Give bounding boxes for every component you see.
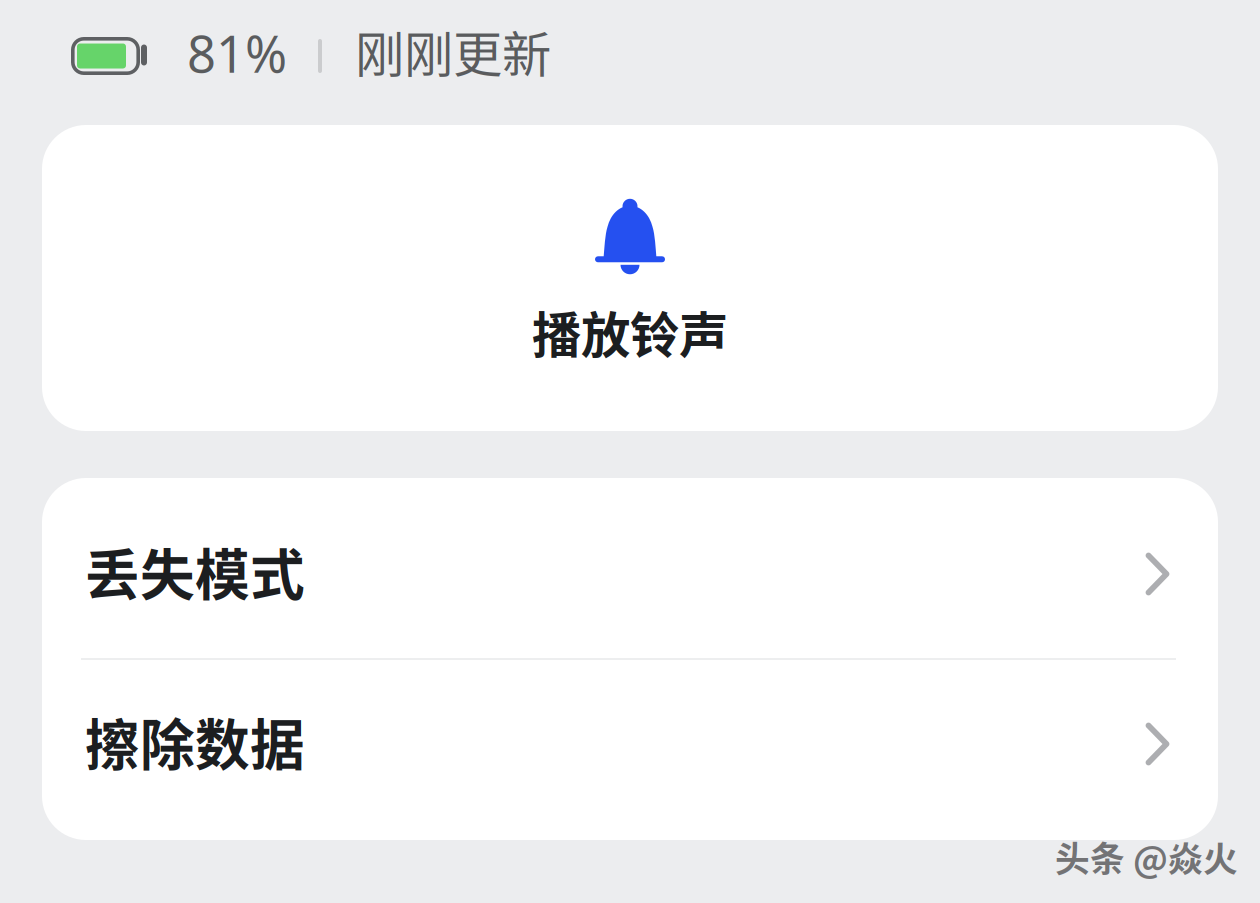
staticText: 丢失模式: [85, 531, 305, 611]
staticText: 头条 @焱火: [1055, 832, 1238, 882]
staticText: 81%: [187, 19, 287, 87]
button[interactable]: 擦除数据: [42, 660, 1218, 840]
button[interactable]: 播放铃声: [42, 125, 1218, 431]
staticText: 擦除数据: [85, 701, 305, 781]
staticText: 刚刚更新: [355, 15, 551, 87]
button[interactable]: 丢失模式: [42, 478, 1218, 658]
staticText: 播放铃声: [532, 296, 728, 367]
